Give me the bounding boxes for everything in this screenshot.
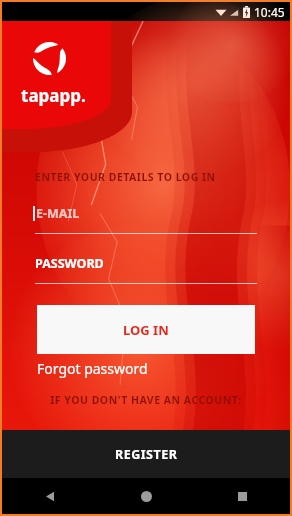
button[interactable]: LOG IN xyxy=(37,305,255,354)
staticText: Forgot password xyxy=(37,359,148,378)
staticText: 10:45 xyxy=(254,4,285,20)
button[interactable]: Home xyxy=(98,478,194,514)
staticText: LOG IN xyxy=(123,321,169,339)
staticText: tapapp. xyxy=(21,84,86,107)
staticText: E-MAIL xyxy=(36,205,80,222)
staticText: IF YOU DON'T HAVE AN ACCOUNT: xyxy=(2,393,290,407)
staticText: PASSWORD xyxy=(35,255,104,272)
button[interactable]: Recent apps xyxy=(194,478,290,514)
staticText: ENTER YOUR DETAILS TO LOG IN xyxy=(35,170,216,184)
button[interactable]: Forgot password xyxy=(37,359,148,378)
button[interactable]: Back xyxy=(2,478,98,514)
staticText: REGISTER xyxy=(115,446,178,463)
button[interactable]: REGISTER xyxy=(2,430,290,478)
